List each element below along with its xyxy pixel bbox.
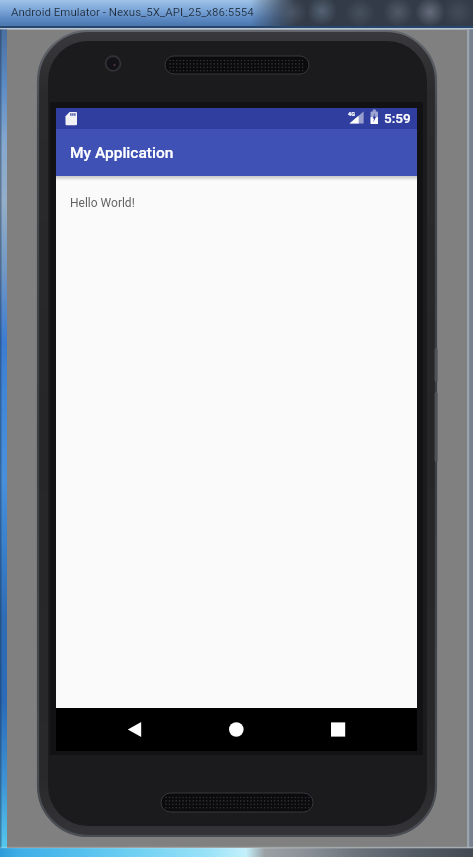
- button[interactable]: [204, 708, 268, 751]
- staticText: 5:59: [384, 110, 411, 126]
- button[interactable]: [104, 708, 168, 751]
- button[interactable]: [306, 708, 370, 751]
- staticText: Android Emulator - Nexus_5X_API_25_x86:5…: [11, 5, 254, 18]
- staticText: My Application: [70, 144, 174, 162]
- staticText: Hello World!: [70, 196, 135, 210]
- staticText: 4G: [348, 111, 355, 117]
